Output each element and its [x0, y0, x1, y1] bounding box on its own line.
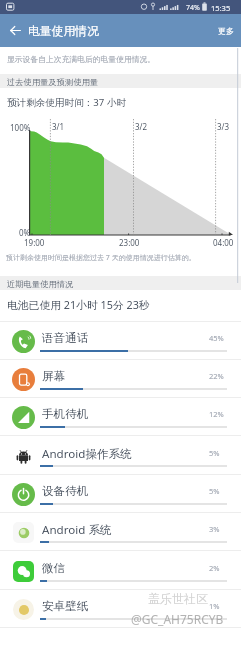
- staticText: 盖乐世社区: [148, 591, 208, 606]
- staticText: 12%: [209, 409, 224, 419]
- staticText: Android 系统: [42, 522, 112, 538]
- staticText: 04:00: [213, 237, 234, 248]
- staticText: 近期电量使用情况: [7, 279, 74, 289]
- staticText: 2%: [209, 563, 220, 573]
- staticText: 显示设备自上次充满电后的电量使用情况。: [7, 54, 156, 64]
- staticText: 安卓壁纸: [42, 599, 89, 614]
- staticText: 预计剩余使用时间是根据您过去 7 天的使用情况进行估算的。: [6, 253, 196, 263]
- staticText: 5%: [209, 448, 220, 458]
- button[interactable]: 设备待机: [0, 475, 241, 513]
- staticText: 3/3: [217, 121, 230, 132]
- button[interactable]: 语音通话: [0, 322, 241, 360]
- staticText: 0%: [19, 227, 31, 238]
- staticText: 15:35: [211, 3, 231, 13]
- staticText: 23:00: [119, 237, 140, 248]
- staticText: 更多: [218, 26, 234, 36]
- button[interactable]: 安卓壁纸: [0, 590, 241, 628]
- staticText: 22%: [209, 371, 224, 381]
- staticText: 19:00: [24, 237, 45, 248]
- button[interactable]: Back: [2, 14, 28, 47]
- staticText: 74%: [186, 3, 200, 13]
- button[interactable]: 微信: [0, 552, 241, 590]
- staticText: Android操作系统: [42, 446, 132, 462]
- button[interactable]: Android 系统: [0, 513, 241, 551]
- staticText: 屏幕: [42, 369, 66, 384]
- button[interactable]: 手机待机: [0, 398, 241, 436]
- button[interactable]: 屏幕: [0, 360, 241, 398]
- staticText: 设备待机: [42, 484, 89, 499]
- staticText: 微信: [42, 561, 66, 576]
- staticText: 5%: [209, 486, 220, 496]
- staticText: 语音通话: [42, 331, 89, 346]
- staticText: 3/1: [52, 121, 65, 132]
- staticText: 电池已使用 21小时 15分 23秒: [7, 297, 150, 312]
- staticText: 3/2: [135, 121, 148, 132]
- staticText: @GC_AH75RCYB: [131, 611, 224, 627]
- button[interactable]: Android操作系统: [0, 437, 241, 475]
- staticText: 手机待机: [42, 407, 89, 422]
- staticText: 预计剩余使用时间：37 小时: [7, 96, 127, 109]
- staticText: 45%: [209, 333, 224, 343]
- staticText: 3%: [209, 524, 220, 534]
- staticText: 电量使用情况: [28, 24, 99, 39]
- staticText: 1%: [209, 601, 220, 611]
- button[interactable]: 更多: [210, 14, 241, 47]
- staticText: 100%: [10, 122, 31, 133]
- staticText: 过去使用量及预测使用量: [7, 77, 99, 87]
